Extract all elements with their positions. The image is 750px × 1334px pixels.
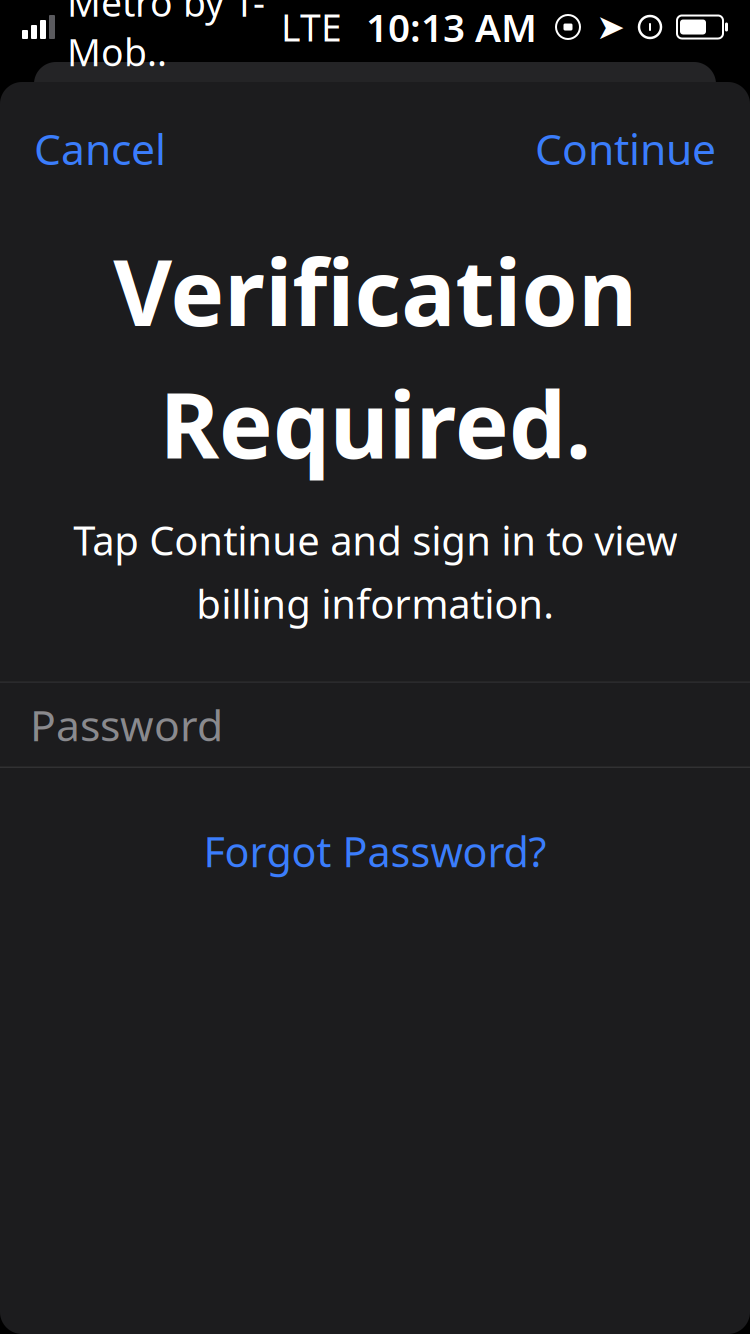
staticText: ➤ [596,7,625,47]
staticText: Forgot Password? [203,824,546,879]
button[interactable]: Cancel [0,104,200,193]
staticText: Cancel [34,120,166,177]
staticText: LTE [281,2,342,52]
staticText: Verification Required. [113,231,637,483]
staticText: Metro by T-Mob.. [67,0,265,77]
staticText: Continue [535,120,716,177]
staticText: 10:13 AM [366,1,537,53]
staticText: Password [30,696,223,753]
button[interactable]: Forgot Password? [163,806,586,897]
button[interactable]: Password [0,683,750,767]
button[interactable]: Continue [501,104,750,193]
staticText: Tap Continue and sign in to view billing… [73,513,677,630]
